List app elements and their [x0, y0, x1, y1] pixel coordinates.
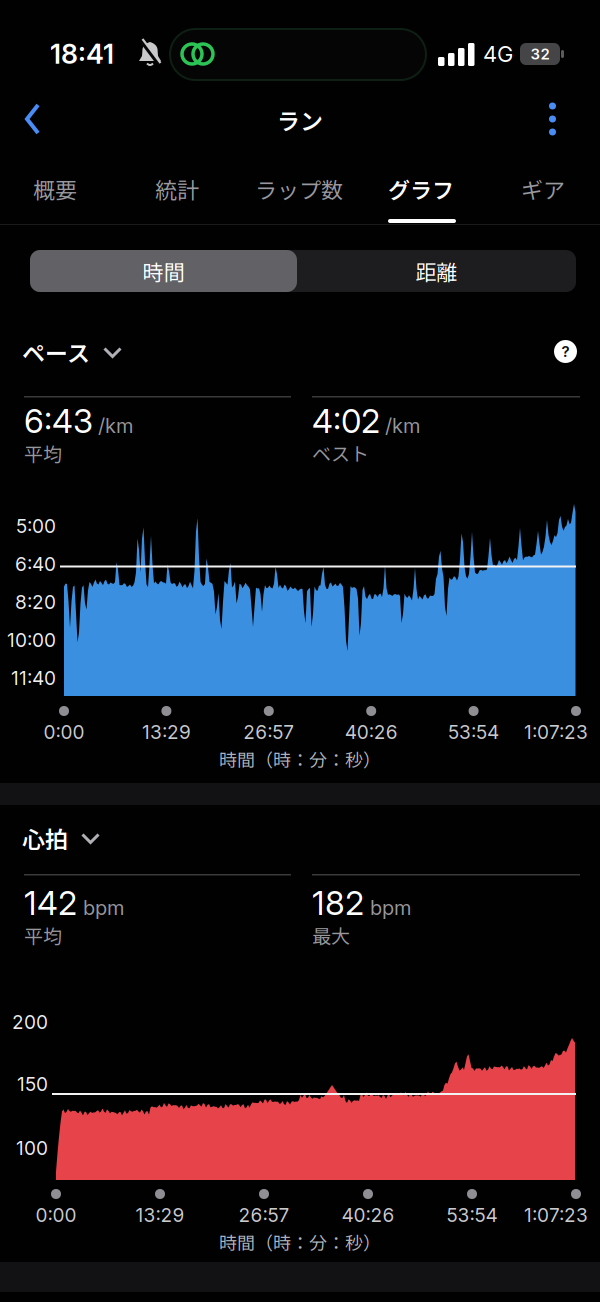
staticText: 4G	[483, 41, 513, 67]
staticText: 150	[17, 1072, 48, 1095]
staticText: 0:00	[43, 720, 84, 743]
button[interactable]: 概要	[0, 169, 115, 209]
staticText: 統計	[155, 173, 199, 205]
staticText: /km	[98, 414, 133, 438]
staticText: 100	[16, 1136, 48, 1159]
staticText: ラン	[277, 103, 323, 137]
staticText: 時間	[142, 256, 184, 286]
staticText: 距離	[415, 256, 457, 286]
staticText: 8:20	[15, 590, 56, 613]
staticText: 13:29	[135, 1203, 184, 1226]
button[interactable]: 心拍	[22, 820, 100, 856]
staticText: 200	[12, 1010, 48, 1033]
staticText: 142	[24, 883, 77, 923]
staticText: 11:40	[11, 666, 56, 689]
staticText: 182	[312, 883, 364, 923]
button[interactable]: 統計	[117, 169, 237, 209]
button[interactable]: More	[538, 97, 566, 141]
staticText: 時間（時：分：秒）	[219, 1229, 381, 1255]
button[interactable]: ラップ数	[239, 169, 359, 209]
staticText: ギア	[521, 173, 565, 205]
staticText: 5:00	[16, 514, 56, 537]
staticText: 10:00	[7, 628, 56, 651]
staticText: 40:26	[345, 720, 398, 743]
button[interactable]: 時間	[30, 250, 297, 292]
staticText: 平均	[24, 921, 62, 949]
staticText: ?	[561, 342, 569, 360]
staticText: 最大	[312, 921, 350, 949]
button[interactable]: Back	[16, 97, 60, 141]
staticText: ペース	[22, 335, 90, 369]
staticText: ラップ数	[255, 173, 343, 205]
staticText: 1:07:23	[524, 1203, 588, 1226]
staticText: 概要	[33, 173, 77, 205]
staticText: 平均	[24, 439, 62, 467]
staticText: 心拍	[22, 821, 68, 855]
button[interactable]: Help	[554, 340, 577, 363]
staticText: 53:54	[448, 720, 499, 743]
staticText: グラフ	[388, 173, 454, 205]
staticText: 4:02	[312, 401, 380, 441]
staticText: 26:57	[243, 720, 294, 743]
button[interactable]: ギア	[483, 169, 600, 209]
staticText: /km	[385, 414, 420, 438]
staticText: ベスト	[312, 439, 369, 467]
staticText: 6:40	[15, 552, 56, 575]
staticText: 18:41	[50, 38, 114, 70]
staticText: 13:29	[142, 720, 191, 743]
staticText: 時間（時：分：秒）	[219, 746, 381, 772]
button[interactable]: グラフ	[361, 169, 481, 209]
staticText: 1:07:23	[524, 720, 588, 743]
staticText: 40:26	[341, 1203, 394, 1226]
staticText: 32	[530, 45, 549, 63]
staticText: 0:00	[35, 1203, 76, 1226]
staticText: bpm	[370, 896, 411, 920]
button[interactable]: 距離	[297, 250, 576, 292]
staticText: bpm	[83, 896, 124, 920]
staticText: 53:54	[446, 1203, 497, 1226]
staticText: 26:57	[238, 1203, 289, 1226]
staticText: 6:43	[24, 401, 93, 441]
button[interactable]: ペース	[22, 334, 122, 370]
